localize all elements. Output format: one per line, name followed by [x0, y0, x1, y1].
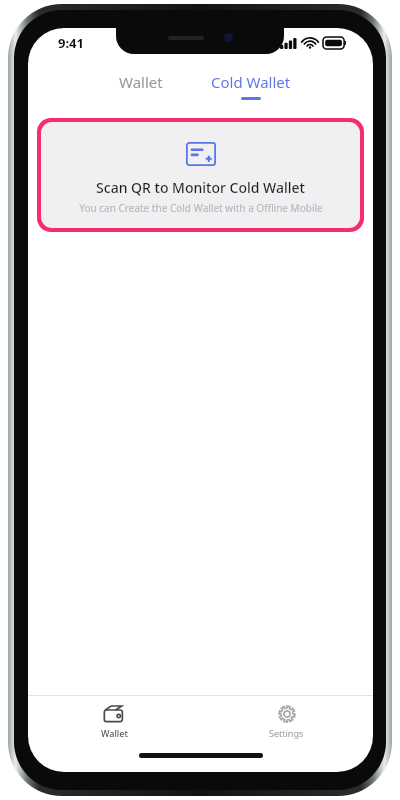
staticText: Wallet	[101, 727, 128, 739]
staticText: Scan QR to Monitor Cold Wallet	[96, 178, 305, 197]
staticText: Wallet	[119, 72, 163, 92]
button[interactable]: Settings	[200, 696, 373, 746]
other: Wallet	[103, 704, 125, 724]
staticText: 9:41	[58, 34, 84, 52]
other: Settings	[277, 704, 297, 724]
button[interactable]: Scan QR code	[37, 118, 364, 232]
other: Scan QR code	[186, 142, 216, 166]
button[interactable]: Wallet	[28, 696, 200, 746]
button[interactable]: Cold Wallet	[201, 68, 301, 104]
button[interactable]: Wallet	[101, 68, 181, 96]
staticText: Cold Wallet	[211, 72, 291, 92]
staticText: Settings	[269, 727, 304, 739]
staticText: You can Create the Cold Wallet with a Of…	[79, 201, 323, 215]
